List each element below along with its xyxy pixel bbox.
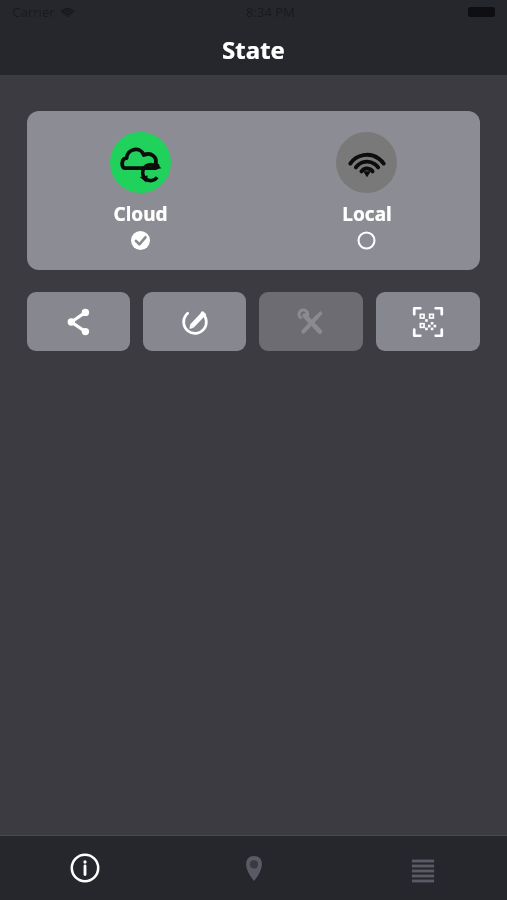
button[interactable]: Info xyxy=(0,836,169,900)
button[interactable]: Local xyxy=(318,126,415,256)
button[interactable]: Cloud xyxy=(92,126,189,256)
staticText: Cloud xyxy=(113,201,168,227)
button[interactable]: Share xyxy=(27,292,130,351)
button[interactable]: Tools xyxy=(259,292,363,351)
staticText: Local xyxy=(342,201,392,227)
button[interactable]: Map xyxy=(169,836,338,900)
button[interactable]: Edit xyxy=(143,292,246,351)
button[interactable]: Scan QR code xyxy=(376,292,480,351)
staticText: State xyxy=(222,33,285,66)
staticText: 8:34 PM xyxy=(246,3,295,21)
staticText: Carrier xyxy=(12,3,55,21)
button[interactable]: Menu xyxy=(338,836,507,900)
